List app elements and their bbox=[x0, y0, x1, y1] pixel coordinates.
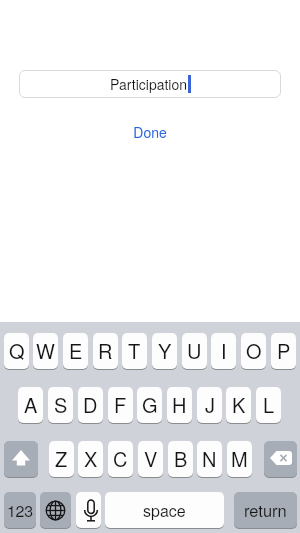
button[interactable] bbox=[4, 441, 38, 477]
staticText: space bbox=[143, 499, 186, 522]
button[interactable]: J bbox=[197, 387, 222, 423]
button[interactable]: D bbox=[78, 387, 103, 423]
button[interactable]: V bbox=[138, 441, 163, 477]
staticText: T bbox=[128, 336, 141, 365]
button[interactable]: H bbox=[167, 387, 192, 423]
button[interactable]: P bbox=[271, 333, 296, 369]
button[interactable] bbox=[40, 492, 71, 528]
staticText: Q bbox=[9, 336, 25, 365]
staticText: A bbox=[24, 390, 38, 419]
button[interactable]: S bbox=[48, 387, 73, 423]
staticText: C bbox=[113, 444, 128, 473]
staticText: L bbox=[263, 390, 275, 419]
staticText: return bbox=[244, 498, 287, 522]
button[interactable]: C bbox=[108, 441, 133, 477]
staticText: I bbox=[221, 336, 227, 365]
staticText: U bbox=[187, 336, 202, 365]
button[interactable] bbox=[76, 492, 101, 528]
staticText: P bbox=[277, 336, 291, 365]
button[interactable]: E bbox=[63, 333, 88, 369]
button[interactable] bbox=[264, 441, 297, 477]
button[interactable]: K bbox=[226, 387, 251, 423]
button[interactable]: U bbox=[182, 333, 207, 369]
staticText: W bbox=[36, 336, 55, 365]
button[interactable]: G bbox=[137, 387, 162, 423]
button[interactable]: N bbox=[197, 441, 222, 477]
button[interactable]: A bbox=[18, 387, 43, 423]
button[interactable]: return bbox=[234, 492, 297, 528]
staticText: G bbox=[142, 390, 158, 419]
staticText: E bbox=[69, 336, 83, 365]
button[interactable]: Done bbox=[0, 122, 300, 142]
staticText: N bbox=[202, 444, 217, 473]
staticText: M bbox=[231, 444, 248, 473]
staticText: Z bbox=[55, 444, 68, 473]
staticText: Participation bbox=[110, 74, 188, 94]
staticText: X bbox=[84, 444, 98, 473]
staticText: S bbox=[54, 390, 68, 419]
button[interactable]: Y bbox=[152, 333, 177, 369]
button[interactable]: O bbox=[241, 333, 266, 369]
staticText: Done bbox=[133, 122, 167, 142]
staticText: 123 bbox=[7, 499, 33, 522]
button[interactable]: space bbox=[105, 492, 224, 528]
staticText: O bbox=[246, 336, 262, 365]
button[interactable]: Z bbox=[49, 441, 74, 477]
button[interactable]: I bbox=[211, 333, 236, 369]
staticText: V bbox=[144, 444, 158, 473]
button[interactable]: B bbox=[168, 441, 193, 477]
button[interactable]: Q bbox=[4, 333, 29, 369]
staticText: J bbox=[205, 390, 215, 419]
button[interactable]: X bbox=[78, 441, 103, 477]
button[interactable]: M bbox=[227, 441, 252, 477]
staticText: K bbox=[232, 390, 246, 419]
staticText: D bbox=[83, 390, 98, 419]
button[interactable]: L bbox=[256, 387, 281, 423]
button[interactable]: T bbox=[122, 333, 147, 369]
button[interactable]: R bbox=[93, 333, 118, 369]
button[interactable]: Participation bbox=[19, 70, 281, 98]
staticText: R bbox=[98, 336, 113, 365]
button[interactable]: W bbox=[33, 333, 58, 369]
staticText: Y bbox=[158, 336, 172, 365]
button[interactable]: F bbox=[108, 387, 133, 423]
staticText: F bbox=[114, 390, 127, 419]
staticText: H bbox=[172, 390, 187, 419]
staticText: B bbox=[174, 444, 188, 473]
button[interactable]: 123 bbox=[4, 492, 36, 528]
